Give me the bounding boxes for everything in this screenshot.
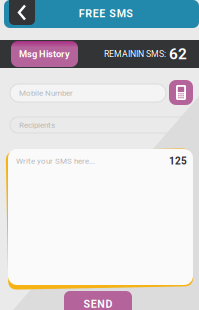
staticText: SEND — [83, 298, 113, 310]
staticText: 62 — [169, 45, 187, 63]
staticText: Recipients — [19, 120, 55, 130]
staticText: Write your SMS here... — [16, 156, 95, 166]
staticText: Mobile Number — [19, 88, 73, 98]
staticText: Msg History — [19, 48, 70, 59]
staticText: REMAININ SMS: — [104, 49, 166, 59]
staticText: FREE SMS — [79, 7, 133, 20]
button[interactable]: Back — [9, 0, 35, 25]
button[interactable]: Msg History — [11, 41, 78, 67]
button[interactable]: SEND — [64, 291, 132, 310]
button[interactable]: Choose contact — [169, 80, 193, 105]
staticText: 125 — [169, 155, 187, 167]
